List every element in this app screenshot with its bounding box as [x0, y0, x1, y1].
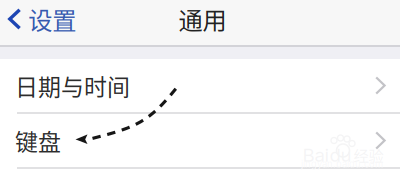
- staticText: 设置: [28, 1, 76, 36]
- staticText: 经验: [353, 144, 383, 166]
- staticText: 通用: [178, 1, 226, 36]
- staticText: jingyan.baidu.com: [301, 158, 383, 170]
- button[interactable]: 键盘: [0, 114, 400, 167]
- staticText: 日期与时间: [15, 69, 130, 102]
- staticText: 键盘: [15, 124, 61, 157]
- button[interactable]: 返回设置: [0, 0, 82, 38]
- staticText: Baidu: [302, 144, 351, 166]
- button[interactable]: 日期与时间: [0, 59, 400, 112]
